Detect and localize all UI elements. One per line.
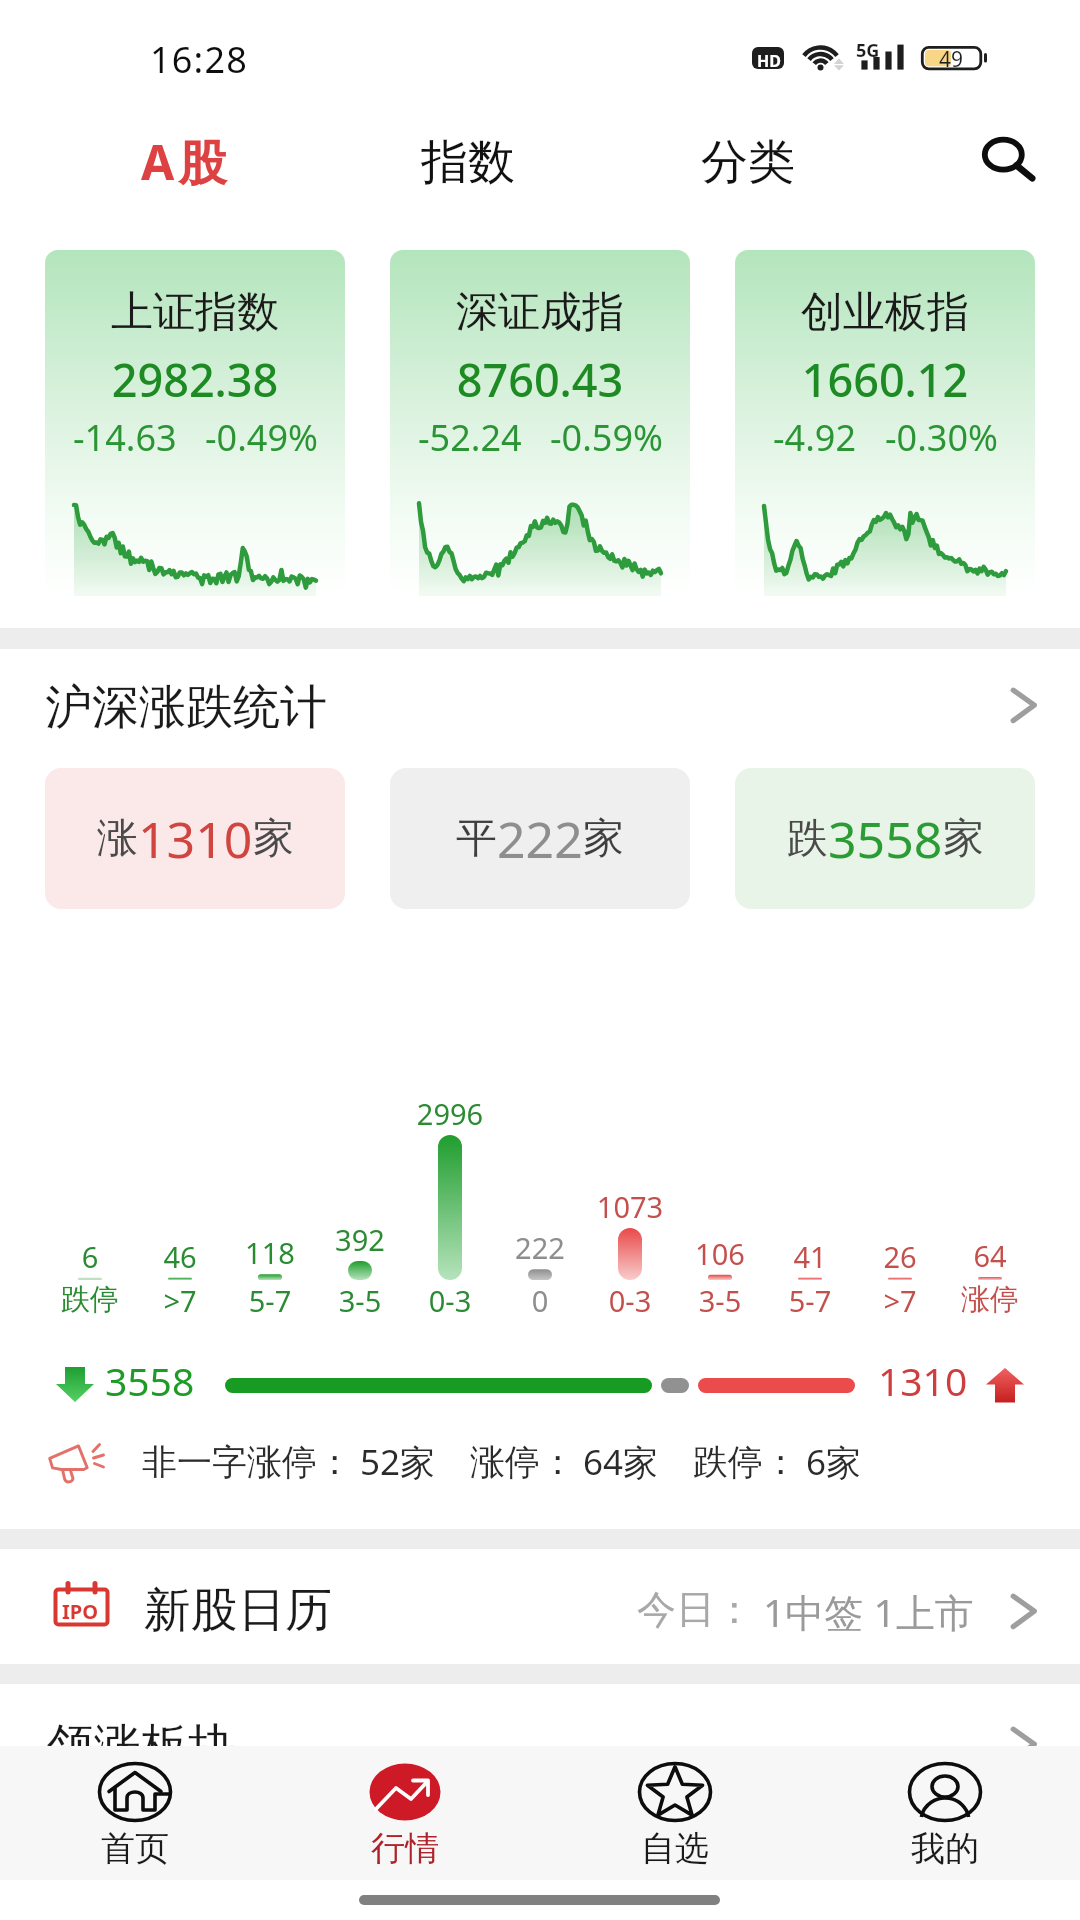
staticText: 我的	[911, 1827, 979, 1870]
staticText: 1660.12	[765, 349, 1005, 410]
button[interactable]: 深证成指	[390, 250, 690, 598]
staticText: 1310	[138, 805, 253, 873]
staticText: 118	[200, 1233, 340, 1272]
staticText: 跌	[787, 813, 828, 865]
staticText: 涨停：	[470, 1440, 575, 1484]
staticText: 上证指数	[75, 286, 315, 339]
button[interactable]: 自选	[540, 1746, 810, 1880]
button[interactable]: IPO	[0, 1549, 1080, 1664]
staticText: 平	[456, 813, 497, 865]
staticText: 5G	[856, 38, 880, 63]
button[interactable]: 创业板指	[735, 250, 1035, 598]
staticText: 6家	[806, 1438, 862, 1486]
staticText: 1073	[560, 1187, 700, 1226]
button[interactable]: 行情	[270, 1746, 540, 1880]
staticText: 3558	[105, 1354, 195, 1407]
staticText: 家	[583, 813, 624, 865]
staticText: 49	[939, 45, 964, 74]
staticText: >7	[110, 1281, 250, 1320]
staticText: 家	[253, 813, 294, 865]
staticText: 5-7	[200, 1281, 340, 1320]
staticText: 家	[943, 813, 984, 865]
staticText: 涨停	[920, 1281, 1060, 1318]
staticText: 3558	[828, 805, 943, 873]
staticText: 分类	[701, 133, 795, 192]
button[interactable]: 上证指数	[45, 250, 345, 598]
staticText: 1中签 1上市	[763, 1585, 974, 1638]
staticText: 涨	[97, 813, 138, 865]
staticText: 行情	[371, 1827, 439, 1870]
staticText: 新股日历	[144, 1581, 332, 1640]
staticText: 3-5	[290, 1281, 430, 1320]
staticText: 222	[470, 1228, 610, 1267]
staticText: 首页	[101, 1827, 169, 1870]
staticText: 46	[110, 1237, 250, 1276]
staticText: -14.63	[73, 413, 177, 462]
staticText: 64家	[583, 1438, 659, 1486]
staticText: -52.24	[418, 413, 522, 462]
staticText: 指数	[421, 133, 515, 192]
button[interactable]: 领涨板块	[0, 1684, 1080, 1746]
staticText: -0.59%	[550, 413, 663, 462]
button[interactable]: 平	[390, 768, 690, 909]
button[interactable]: A股	[127, 117, 245, 207]
staticText: 222	[497, 805, 583, 873]
staticText: 6	[20, 1237, 160, 1276]
staticText: 2996	[380, 1094, 520, 1133]
button[interactable]: 涨	[45, 768, 345, 909]
button[interactable]: 指数	[407, 121, 529, 204]
button[interactable]: Search	[962, 108, 1054, 200]
staticText: 5-7	[740, 1281, 880, 1320]
staticText: 跌停	[20, 1281, 160, 1318]
staticText: 8760.43	[420, 349, 660, 410]
staticText: -4.92	[773, 413, 857, 462]
staticText: 今日：	[637, 1585, 754, 1634]
button[interactable]: 沪深涨跌统计	[0, 649, 1080, 749]
staticText: 0-3	[380, 1281, 520, 1320]
staticText: >7	[830, 1281, 970, 1320]
staticText: 392	[290, 1220, 430, 1259]
staticText: A股	[141, 129, 231, 195]
staticText: 自选	[641, 1827, 709, 1870]
button[interactable]: 我的	[810, 1746, 1080, 1880]
staticText: 0	[470, 1281, 610, 1320]
button[interactable]: 分类	[687, 121, 809, 204]
staticText: 沪深涨跌统计	[45, 678, 327, 737]
staticText: 0-3	[560, 1281, 700, 1320]
staticText: 3-5	[650, 1281, 790, 1320]
staticText: 跌停：	[693, 1440, 798, 1484]
staticText: 16:28	[150, 35, 249, 84]
staticText: -0.49%	[205, 413, 318, 462]
staticText: -0.30%	[885, 413, 998, 462]
staticText: 非一字涨停：	[142, 1440, 352, 1484]
staticText: 41	[740, 1237, 880, 1276]
staticText: 52家	[360, 1438, 436, 1486]
button[interactable]: 跌	[735, 768, 1035, 909]
staticText: IPO	[62, 1598, 99, 1625]
staticText: HD	[757, 50, 781, 72]
staticText: 106	[650, 1234, 790, 1273]
staticText: 创业板指	[765, 286, 1005, 339]
staticText: 1310	[878, 1354, 968, 1407]
button[interactable]: 首页	[0, 1746, 270, 1880]
staticText: 领涨板块	[47, 1717, 235, 1776]
staticText: 26	[830, 1237, 970, 1276]
staticText: 深证成指	[420, 286, 660, 339]
staticText: 2982.38	[75, 349, 315, 410]
staticText: 64	[920, 1236, 1060, 1275]
